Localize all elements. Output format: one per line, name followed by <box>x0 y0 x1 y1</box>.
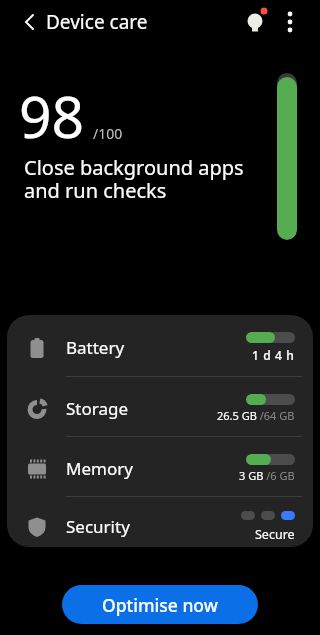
staticText: Battery <box>66 336 125 359</box>
staticText: 3 GB /6 GB <box>239 468 295 483</box>
staticText: 1 d 4 h <box>252 347 295 363</box>
button[interactable]: Memory <box>7 437 313 496</box>
staticText: Security <box>66 515 130 538</box>
button[interactable]: Storage <box>7 377 313 436</box>
button[interactable]: Optimise now <box>62 585 258 624</box>
button[interactable]: Battery <box>7 315 313 376</box>
staticText: Optimise now <box>102 593 218 617</box>
staticText: Device care <box>46 9 148 35</box>
button[interactable] <box>10 2 50 42</box>
button[interactable] <box>272 2 312 42</box>
staticText: 98 <box>19 77 85 155</box>
button[interactable] <box>237 2 277 42</box>
staticText: Close background apps and run checks <box>24 154 244 204</box>
staticText: Secure <box>255 526 295 543</box>
staticText: Memory <box>66 457 133 480</box>
button[interactable]: Security <box>7 497 313 546</box>
staticText: /100 <box>93 124 123 143</box>
staticText: Storage <box>66 397 129 420</box>
staticText: 26.5 GB /64 GB <box>217 408 295 423</box>
